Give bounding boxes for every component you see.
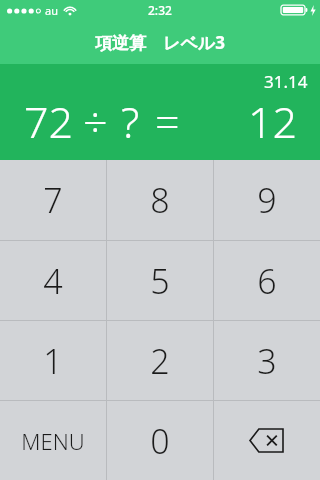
staticText: ÷: [83, 92, 108, 151]
button[interactable]: 7: [0, 160, 106, 240]
staticText: au: [45, 3, 58, 18]
staticText: 項逆算 レベル3: [95, 31, 225, 54]
staticText: 6: [257, 258, 277, 304]
button[interactable]: 3: [214, 321, 320, 400]
staticText: 12: [248, 92, 298, 151]
staticText: 4: [43, 258, 63, 304]
staticText: =: [155, 92, 180, 151]
staticText: ?: [121, 92, 140, 151]
button[interactable]: Backspace: [214, 401, 320, 480]
staticText: 9: [257, 177, 277, 223]
button[interactable]: 5: [107, 241, 213, 320]
staticText: 31.14: [264, 70, 308, 93]
button[interactable]: 6: [214, 241, 320, 320]
staticText: 2:32: [148, 2, 172, 18]
button[interactable]: 2: [107, 321, 213, 400]
button[interactable]: 9: [214, 160, 320, 240]
staticText: 3: [257, 338, 277, 384]
staticText: 7: [43, 177, 63, 223]
staticText: MENU: [21, 426, 85, 456]
button[interactable]: 0: [107, 401, 213, 480]
staticText: 72: [24, 92, 74, 151]
button[interactable]: 1: [0, 321, 106, 400]
button[interactable]: 8: [107, 160, 213, 240]
button[interactable]: 4: [0, 241, 106, 320]
staticText: 2: [150, 338, 170, 384]
staticText: 8: [150, 177, 170, 223]
staticText: 1: [43, 338, 63, 384]
button[interactable]: MENU: [0, 401, 106, 480]
staticText: 0: [150, 418, 170, 464]
staticText: 5: [150, 258, 170, 304]
